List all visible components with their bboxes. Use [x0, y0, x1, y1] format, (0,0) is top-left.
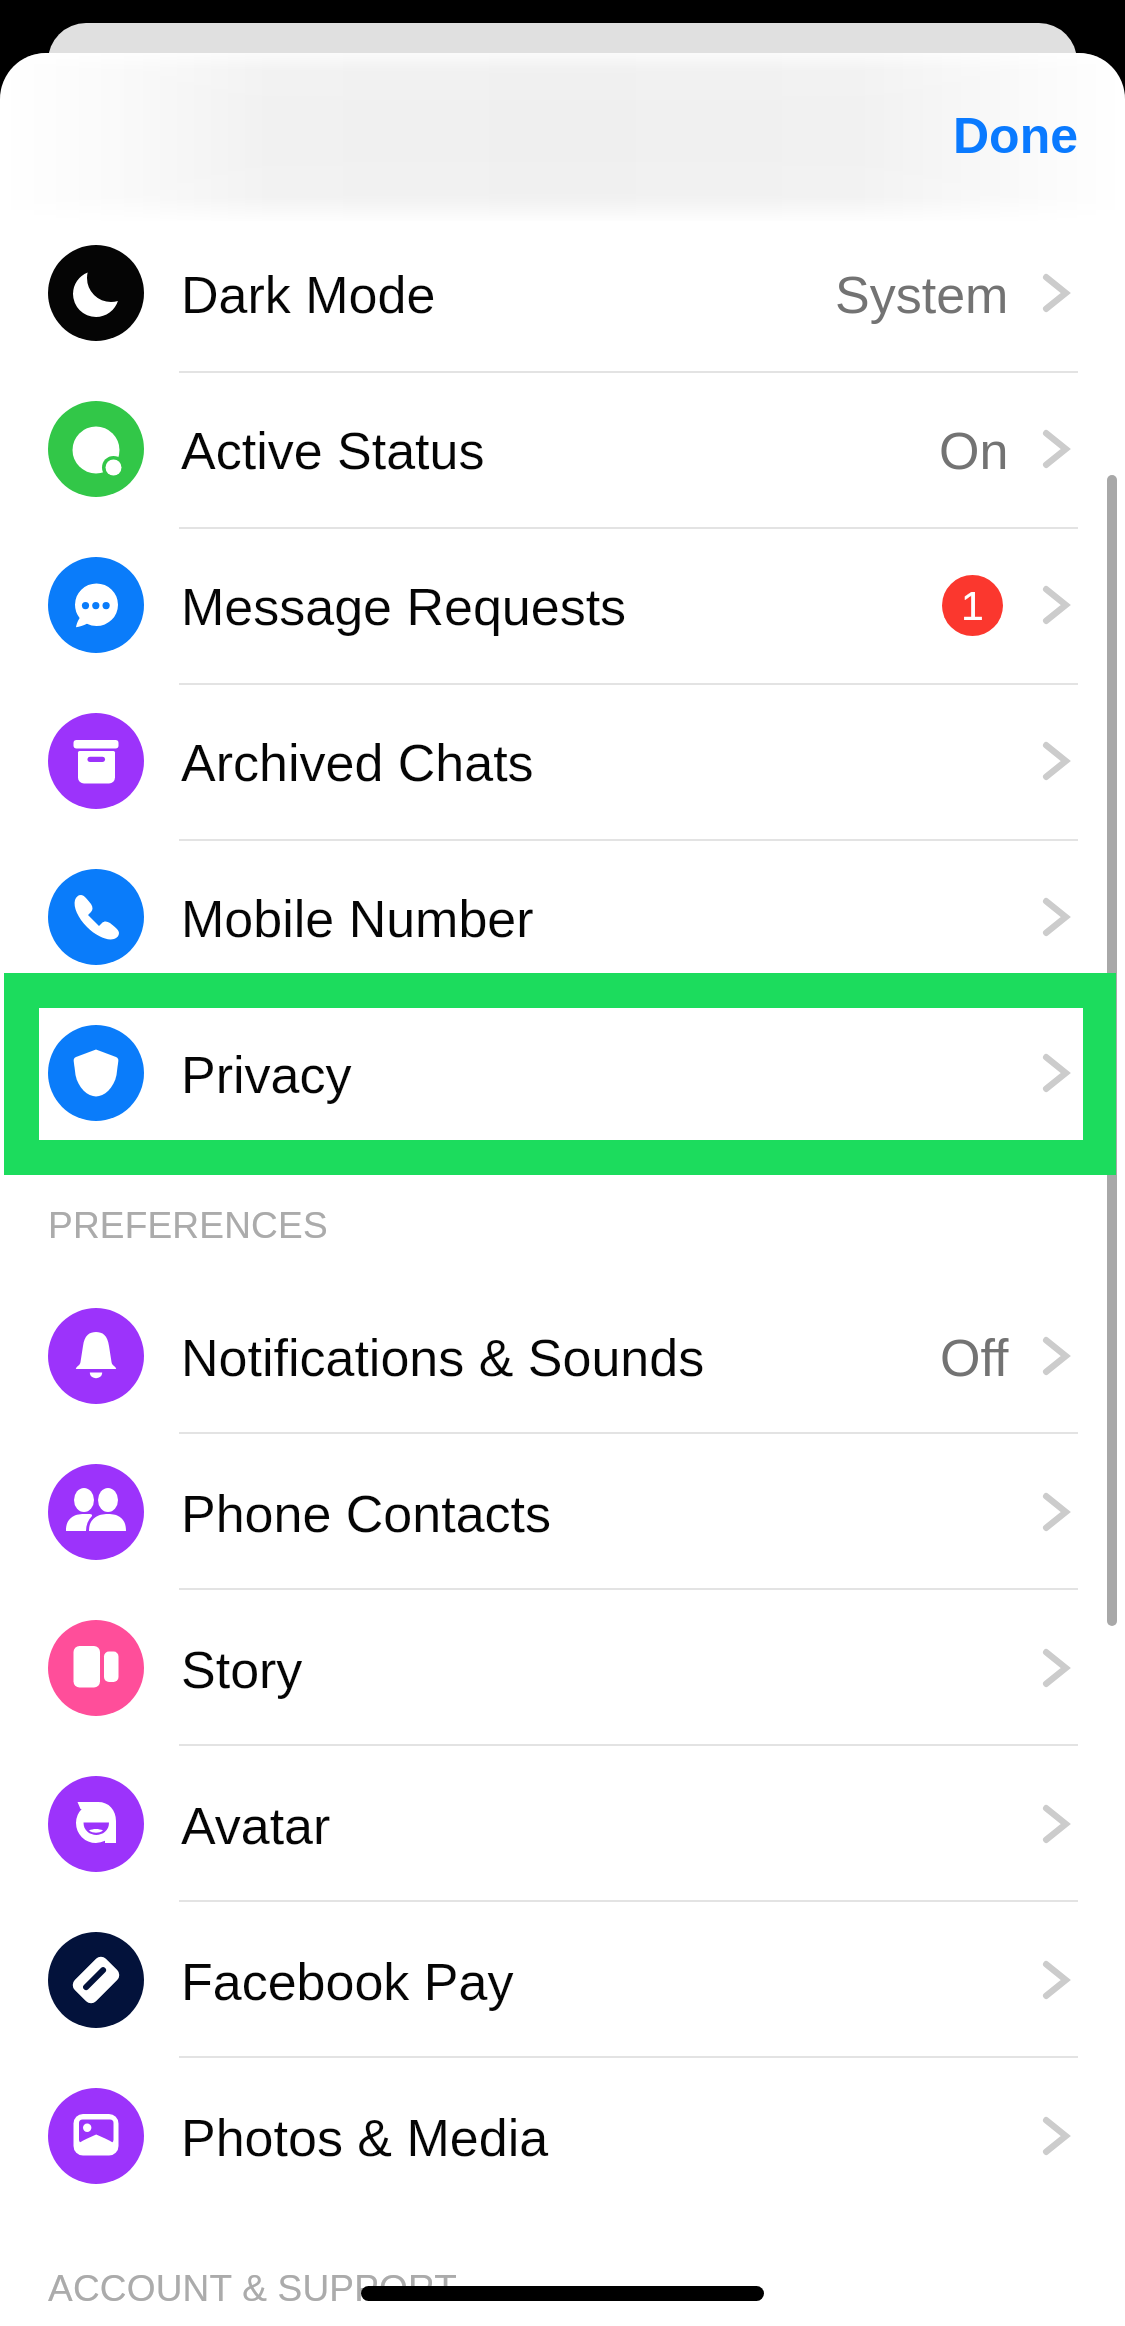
other: Open Message Requests	[1043, 586, 1069, 624]
button[interactable]: Privacy	[0, 995, 1125, 1151]
button[interactable]: Message Requests	[0, 527, 1125, 683]
other: Open Active Status	[1043, 430, 1069, 468]
staticText: Story	[181, 1641, 303, 1699]
button[interactable]: Archived Chats	[0, 683, 1125, 839]
other: Open Privacy	[1043, 1054, 1069, 1092]
button[interactable]: Notifications & Sounds	[0, 1278, 1125, 1434]
button[interactable]: Phone Contacts	[0, 1434, 1125, 1590]
other: Open Notifications & Sounds	[1043, 1337, 1069, 1375]
button[interactable]: Dark Mode	[0, 215, 1125, 371]
staticText: 1	[961, 583, 984, 629]
staticText: Done	[953, 108, 1078, 164]
button[interactable]: Done	[930, 93, 1100, 179]
staticText: Off	[940, 1329, 1009, 1387]
other: Open Photos & Media	[1043, 2117, 1069, 2155]
button[interactable]: Story	[0, 1590, 1125, 1746]
other: Open Dark Mode	[1043, 274, 1069, 312]
staticText: Facebook Pay	[181, 1953, 514, 2011]
staticText: Privacy	[181, 1046, 352, 1104]
staticText: Message Requests	[181, 578, 627, 636]
button[interactable]: Photos & Media	[0, 2058, 1125, 2214]
button[interactable]: Mobile Number	[0, 839, 1125, 995]
staticText: Mobile Number	[181, 890, 534, 948]
button[interactable]: Active Status	[0, 371, 1125, 527]
staticText: ACCOUNT & SUPPORT	[48, 2268, 458, 2309]
staticText: Phone Contacts	[181, 1485, 552, 1543]
other: Open Archived Chats	[1043, 742, 1069, 780]
staticText: Photos & Media	[181, 2109, 549, 2167]
other: Open Avatar	[1043, 1805, 1069, 1843]
staticText: Dark Mode	[181, 266, 436, 324]
button[interactable]: Facebook Pay	[0, 1902, 1125, 2058]
staticText: System	[835, 266, 1009, 324]
other: Open Phone Contacts	[1043, 1493, 1069, 1531]
other: Open Facebook Pay	[1043, 1961, 1069, 1999]
staticText: Archived Chats	[181, 734, 534, 792]
staticText: PREFERENCES	[48, 1205, 328, 1246]
other: Open Story	[1043, 1649, 1069, 1687]
other: Open Mobile Number	[1043, 898, 1069, 936]
staticText: Active Status	[181, 422, 485, 480]
staticText: Avatar	[181, 1797, 331, 1855]
button[interactable]: Avatar	[0, 1746, 1125, 1902]
staticText: On	[939, 422, 1009, 480]
staticText: Notifications & Sounds	[181, 1329, 705, 1387]
